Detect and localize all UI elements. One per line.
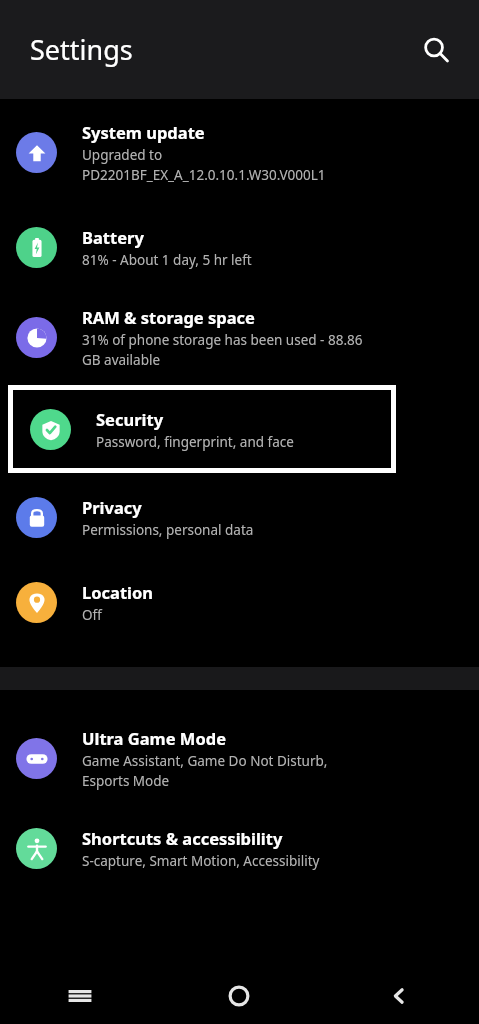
staticText: Off [82,606,102,624]
staticText: Password, fingerprint, and face [96,433,294,451]
staticText: S-capture, Smart Motion, Accessibility [82,852,320,870]
staticText: Privacy [82,496,142,518]
staticText: RAM & storage space [82,306,255,328]
button[interactable]: Battery [0,205,479,289]
staticText: Ultra Game Mode [82,727,226,749]
staticText: Shortcuts & accessibility [82,827,283,849]
staticText: 81% - About 1 day, 5 hr left [82,251,252,269]
button[interactable]: System update [0,99,479,205]
staticText: Battery [82,226,144,248]
button[interactable]: Location [0,561,479,643]
button[interactable]: Shortcuts & accessibility [0,806,479,890]
button[interactable]: Home [159,968,319,1024]
button[interactable]: Search [409,23,463,77]
staticText: Upgraded to PD2201BF_EX_A_12.0.10.1.W30.… [82,146,326,184]
staticText: System update [82,121,205,143]
staticText: Location [82,581,154,603]
button[interactable]: Back [319,968,479,1024]
staticText: Permissions, personal data [82,521,254,539]
button[interactable]: Security [8,385,396,473]
button[interactable]: Privacy [0,473,479,561]
button[interactable]: RAM & storage space [0,289,479,385]
staticText: Game Assistant, Game Do Not Disturb, Esp… [82,752,328,790]
staticText: Settings [30,31,133,68]
button[interactable]: Recent apps [0,968,159,1024]
staticText: Security [96,408,164,430]
button[interactable]: Ultra Game Mode [0,710,479,806]
staticText: 31% of phone storage has been used - 88.… [82,331,363,369]
